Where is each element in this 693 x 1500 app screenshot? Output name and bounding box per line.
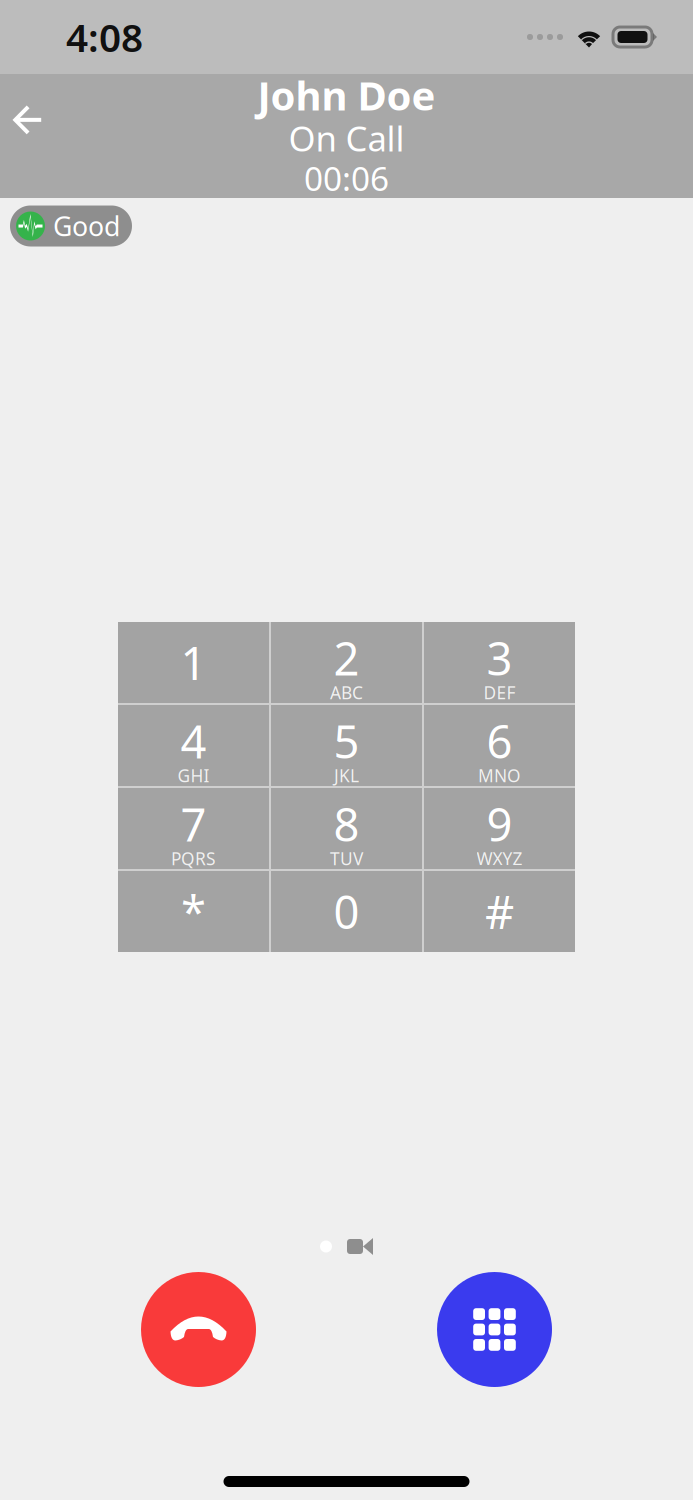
staticText: ABC [330, 681, 363, 704]
button[interactable]: * [118, 871, 269, 952]
button[interactable]: End call [141, 1272, 256, 1387]
button[interactable]: 0 [271, 871, 422, 952]
button[interactable]: Good [10, 205, 132, 246]
button[interactable]: 4 [118, 705, 269, 786]
button[interactable]: 5 [271, 705, 422, 786]
staticText: 8 [333, 794, 359, 854]
button[interactable]: 9 [424, 788, 575, 869]
staticText: 7 [180, 794, 206, 854]
staticText: 6 [486, 711, 512, 771]
staticText: TUV [330, 847, 363, 870]
button[interactable]: 6 [424, 705, 575, 786]
staticText: # [485, 881, 514, 942]
button[interactable]: 1 [118, 622, 269, 703]
staticText: 0 [333, 881, 359, 942]
staticText: PQRS [171, 847, 216, 870]
button[interactable]: 7 [118, 788, 269, 869]
staticText: MNO [478, 764, 521, 787]
staticText: 5 [333, 711, 359, 771]
button[interactable]: Keypad [437, 1272, 552, 1387]
staticText: GHI [177, 764, 209, 787]
staticText: 4:08 [66, 11, 143, 63]
button[interactable]: 3 [424, 622, 575, 703]
button[interactable]: # [424, 871, 575, 952]
staticText: 00:06 [304, 156, 389, 200]
staticText: JKL [334, 764, 359, 787]
button[interactable]: Back [0, 90, 54, 150]
staticText: 1 [180, 632, 206, 693]
button[interactable]: 8 [271, 788, 422, 869]
staticText: 2 [333, 628, 359, 688]
staticText: Good [53, 208, 120, 244]
staticText: WXYZ [476, 847, 522, 870]
staticText: On Call [288, 115, 404, 161]
staticText: * [181, 881, 206, 942]
staticText: 4 [180, 711, 206, 771]
staticText: 9 [486, 794, 512, 854]
staticText: 3 [486, 628, 512, 688]
button[interactable]: 2 [271, 622, 422, 703]
staticText: DEF [483, 681, 515, 704]
staticText: John Doe [257, 68, 435, 121]
